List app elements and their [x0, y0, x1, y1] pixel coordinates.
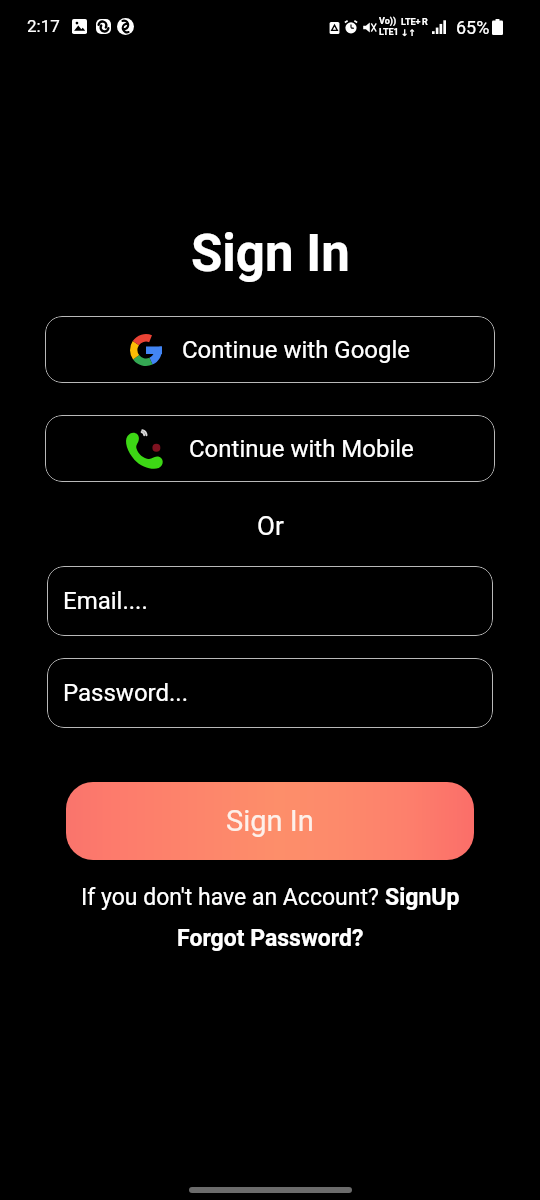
- staticText: Sign In: [191, 224, 350, 284]
- staticText: Continue with Mobile: [189, 435, 414, 463]
- staticText: Forgot Password?: [177, 925, 364, 952]
- button[interactable]: Continue with Google: [45, 316, 495, 383]
- staticText: Or: [257, 511, 284, 541]
- staticText: LTE+: [401, 17, 421, 28]
- staticText: SignUp: [385, 884, 460, 911]
- button[interactable]: Sign In: [66, 782, 474, 860]
- staticText: Vo)): [379, 16, 397, 27]
- button[interactable]: Password...: [47, 658, 493, 728]
- staticText: R: [422, 17, 428, 28]
- button[interactable]: Continue with Mobile: [45, 415, 495, 482]
- staticText: 65%: [456, 17, 490, 38]
- staticText: Sign In: [226, 804, 314, 838]
- button[interactable]: SignUp: [385, 884, 460, 911]
- staticText: ↓↑: [401, 28, 417, 38]
- staticText: Password...: [63, 679, 188, 707]
- staticText: Continue with Google: [182, 336, 411, 364]
- staticText: Email....: [63, 587, 148, 615]
- staticText: LTE1: [379, 27, 399, 38]
- button[interactable]: Email....: [47, 566, 493, 636]
- button[interactable]: Forgot Password?: [177, 925, 364, 952]
- staticText: 2:17: [27, 16, 60, 36]
- staticText: If you don't have an Account?: [81, 884, 385, 911]
